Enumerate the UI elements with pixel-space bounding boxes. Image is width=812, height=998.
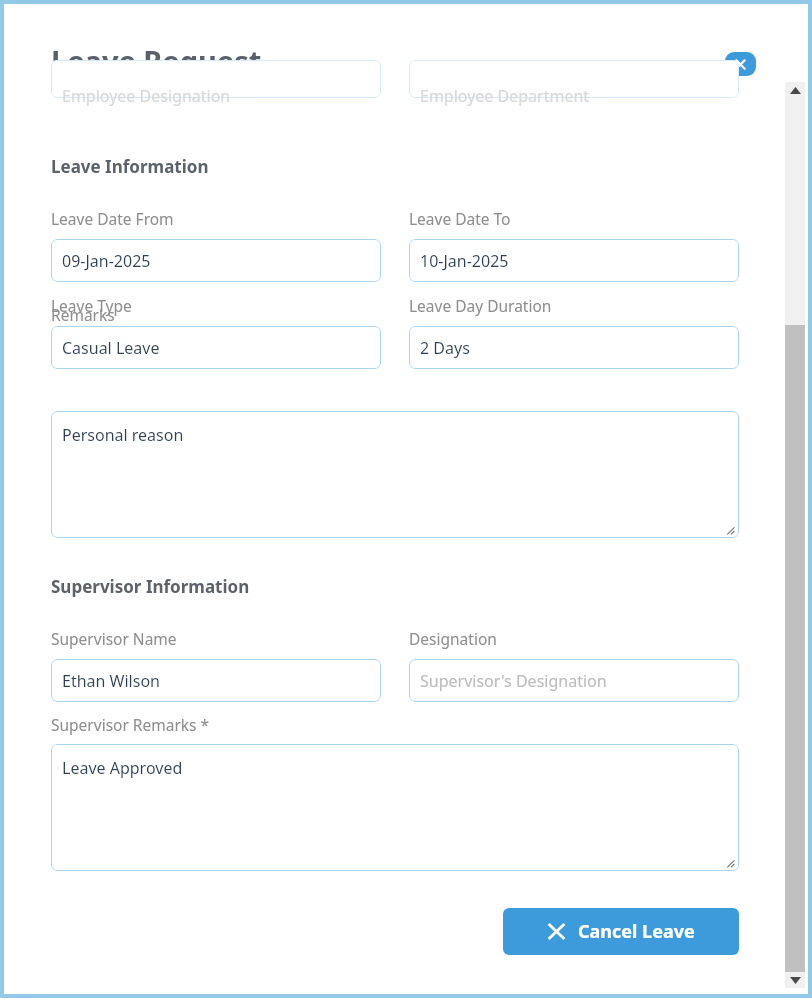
staticText: Personal reason [62, 424, 184, 446]
staticText: Leave Date From [51, 208, 174, 229]
staticText: Supervisor Information [51, 575, 250, 598]
staticText: Leave Type [51, 295, 132, 316]
staticText: Supervisor Remarks * [51, 714, 210, 735]
button[interactable]: Supervisor's Designation [409, 659, 739, 702]
staticText: Leave Date To [409, 208, 511, 229]
button[interactable]: Casual Leave [51, 326, 381, 369]
staticText: Supervisor Name [51, 628, 177, 649]
staticText: Leave Approved [62, 757, 183, 779]
button[interactable]: 2 Days [409, 326, 739, 369]
other: Scroll up [790, 87, 801, 94]
button[interactable]: 09-Jan-2025 [51, 239, 381, 282]
other: Scroll down [790, 977, 801, 984]
button[interactable]: Employee Department [409, 80, 739, 118]
button[interactable]: Employee Designation [51, 80, 381, 118]
staticText: 10-Jan-2025 [420, 250, 509, 272]
staticText: Leave Information [51, 155, 209, 178]
staticText: Leave Day Duration [409, 295, 552, 316]
button[interactable]: Cancel Leave [503, 908, 739, 955]
staticText: Designation [409, 628, 497, 649]
staticText: Leave Request [51, 41, 262, 80]
button[interactable]: 10-Jan-2025 [409, 239, 739, 282]
staticText: Employee Department [420, 85, 590, 107]
button[interactable]: Leave Approved [51, 744, 739, 871]
button[interactable]: Ethan Wilson [51, 659, 381, 702]
staticText: 09-Jan-2025 [62, 250, 151, 272]
staticText: Ethan Wilson [62, 670, 160, 692]
button[interactable]: Personal reason [51, 411, 739, 538]
staticText: Remarks [51, 304, 115, 325]
staticText: Supervisor's Designation [420, 670, 607, 692]
staticText: 2 Days [420, 337, 470, 359]
staticText: Employee Designation [62, 85, 231, 107]
staticText: Casual Leave [62, 337, 160, 359]
button[interactable]: Close [725, 52, 756, 76]
staticText: Cancel Leave [578, 919, 695, 944]
